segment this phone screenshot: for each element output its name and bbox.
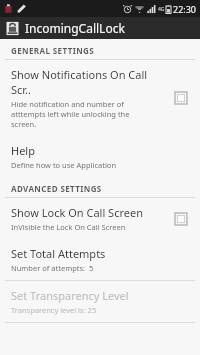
staticText: 4G bbox=[158, 6, 165, 13]
button[interactable]: Toggle Show Notifications On Call Scr.. bbox=[170, 87, 192, 109]
staticText: Set Total Attempts bbox=[11, 246, 106, 261]
staticText: Help bbox=[11, 143, 35, 158]
staticText: InVisible the Lock On Call Screen bbox=[11, 222, 126, 232]
staticText: ADVANCED SETTINGS bbox=[11, 183, 102, 194]
staticText: Define how to use Application bbox=[11, 160, 117, 170]
button[interactable]: Toggle Show Lock On Call Screen bbox=[170, 208, 192, 230]
staticText: GENERAL SETTINGS bbox=[11, 45, 95, 56]
staticText: Number of attempts: 5 bbox=[11, 263, 94, 273]
button[interactable]: Set Total Attempts bbox=[0, 239, 200, 280]
button[interactable]: Show Notifications On Call Scr.. bbox=[0, 60, 200, 136]
staticText: Show Lock On Call Screen bbox=[11, 205, 143, 220]
button[interactable]: Help bbox=[0, 136, 200, 177]
staticText: 22:30 bbox=[173, 3, 197, 15]
staticText: Hide notification and number of atttempt… bbox=[11, 99, 130, 129]
staticText: Set Transparency Level bbox=[11, 288, 129, 303]
staticText: Show Notifications On Call Scr.. bbox=[11, 67, 164, 97]
button[interactable]: Show Lock On Call Screen bbox=[0, 198, 200, 239]
staticText: Transparency level is: 25 bbox=[11, 305, 97, 315]
staticText: IncomingCallLock bbox=[25, 20, 125, 36]
